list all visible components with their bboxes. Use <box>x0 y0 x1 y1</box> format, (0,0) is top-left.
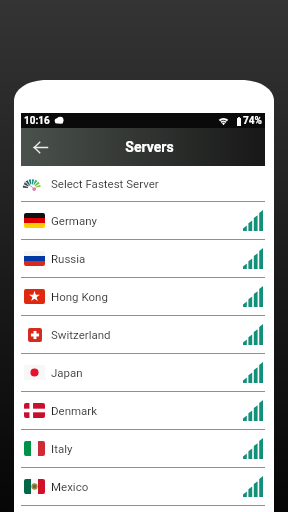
staticText: Germany <box>51 214 97 227</box>
staticText: Select Fastest Server <box>51 177 159 190</box>
button[interactable]: Denmark <box>21 392 265 429</box>
staticText: Russia <box>51 252 86 265</box>
staticText: Hong Kong <box>51 290 108 303</box>
staticText: 10:16 <box>24 115 50 127</box>
button[interactable]: Hong Kong <box>21 278 265 315</box>
staticText: Switzerland <box>51 328 111 341</box>
button[interactable]: Russia <box>21 240 265 277</box>
staticText: 74% <box>243 115 262 127</box>
button[interactable]: Germany <box>21 202 265 239</box>
button[interactable]: Italy <box>21 430 265 467</box>
staticText: Italy <box>51 442 73 455</box>
button[interactable]: Mexico <box>21 468 265 505</box>
button[interactable]: Japan <box>21 354 265 391</box>
button[interactable]: Select Fastest Server <box>21 166 265 201</box>
staticText: Denmark <box>51 404 98 417</box>
button[interactable]: Back <box>21 128 59 166</box>
button[interactable]: Switzerland <box>21 316 265 353</box>
staticText: Servers <box>125 139 174 155</box>
staticText: Mexico <box>51 480 89 493</box>
staticText: Japan <box>51 366 83 379</box>
